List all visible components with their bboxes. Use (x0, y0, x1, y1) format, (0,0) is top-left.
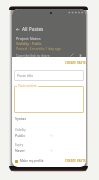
staticText: Expiry (15, 143, 24, 147)
button[interactable]: Paste title (14, 70, 84, 81)
staticText: CREATE PASTE (65, 159, 86, 163)
staticText: Visibility : Public (16, 41, 42, 46)
staticText: Pasted : 3 months 1 day ago (16, 46, 61, 51)
button[interactable] (14, 86, 84, 113)
button[interactable]: Edit (69, 52, 75, 58)
button[interactable]: CREATE PASTE (64, 158, 86, 164)
staticText: All Pastes (22, 26, 44, 33)
staticText: CREATE PASTE (65, 61, 86, 65)
staticText: Make my profile (20, 159, 44, 163)
staticText: Syntax (15, 116, 27, 121)
staticText: Project Notes (16, 36, 41, 41)
button[interactable]: Public (15, 133, 53, 140)
staticText: Public (15, 133, 26, 138)
button[interactable]: Delete (77, 52, 83, 58)
button[interactable]: Never (15, 148, 53, 155)
button[interactable]: Syntax (15, 116, 53, 123)
button[interactable]: Make my profile (14, 158, 45, 164)
staticText: Paste content (18, 84, 37, 88)
staticText: Copy the link to share (16, 53, 50, 57)
staticText: Visibility (15, 128, 26, 132)
staticText: Never (15, 148, 26, 153)
button[interactable]: CREATE PASTE (64, 60, 86, 66)
staticText: Paste title (17, 73, 34, 78)
button[interactable]: Back (13, 25, 21, 33)
